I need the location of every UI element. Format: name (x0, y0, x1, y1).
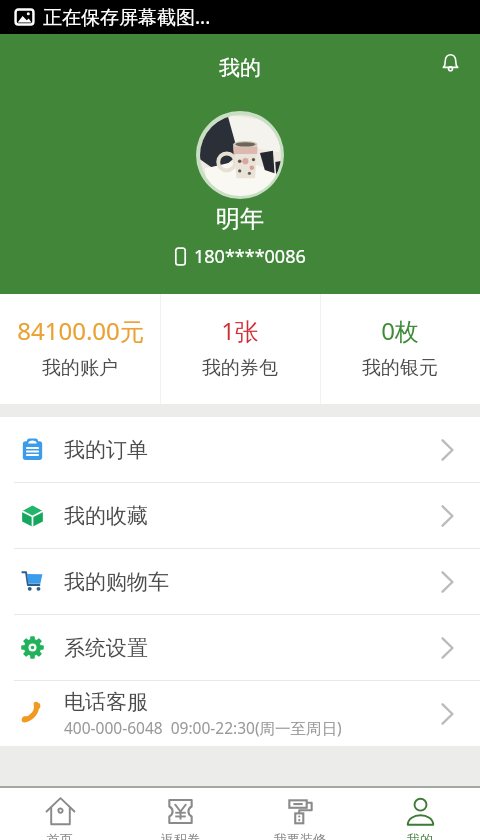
staticText: 我的 (407, 831, 433, 840)
staticText: 返积卷 (161, 831, 200, 840)
staticText: 我的收藏 (64, 503, 148, 529)
button[interactable]: Profile avatar (196, 111, 284, 199)
staticText: 首页 (47, 831, 73, 840)
staticText: 我的 (219, 55, 261, 81)
staticText: 明年 (216, 204, 264, 234)
button[interactable]: 我要装修 (240, 788, 360, 840)
staticText: 我的银元 (362, 356, 438, 380)
button[interactable]: 返积卷 (120, 788, 240, 840)
staticText: 400-000-6048 09:00-22:30(周一至周日) (64, 717, 342, 738)
staticText: 0枚 (381, 314, 419, 347)
button[interactable]: 我的订单 (0, 417, 480, 482)
staticText: 我的券包 (202, 356, 278, 380)
button[interactable]: 我的购物车 (0, 549, 480, 614)
button[interactable]: 84100.00元 (0, 294, 160, 404)
staticText: 180****0086 (194, 244, 306, 269)
staticText: 正在保存屏幕截图... (43, 4, 211, 30)
button[interactable]: 系统设置 (0, 615, 480, 680)
button[interactable]: Notifications (428, 41, 472, 85)
staticText: 84100.00元 (17, 314, 144, 347)
button[interactable]: 我的收藏 (0, 483, 480, 548)
button[interactable]: 首页 (0, 788, 120, 840)
staticText: 1张 (221, 314, 259, 347)
staticText: 我要装修 (274, 831, 326, 840)
button[interactable]: 1张 (160, 294, 320, 404)
staticText: 电话客服 (64, 689, 148, 715)
staticText: 我的账户 (42, 356, 118, 380)
staticText: 我的订单 (64, 437, 148, 463)
button[interactable]: 电话客服 (0, 681, 480, 746)
button[interactable]: 我的 (360, 788, 480, 840)
button[interactable]: 0枚 (320, 294, 480, 404)
staticText: 我的购物车 (64, 569, 169, 595)
staticText: 系统设置 (64, 635, 148, 661)
